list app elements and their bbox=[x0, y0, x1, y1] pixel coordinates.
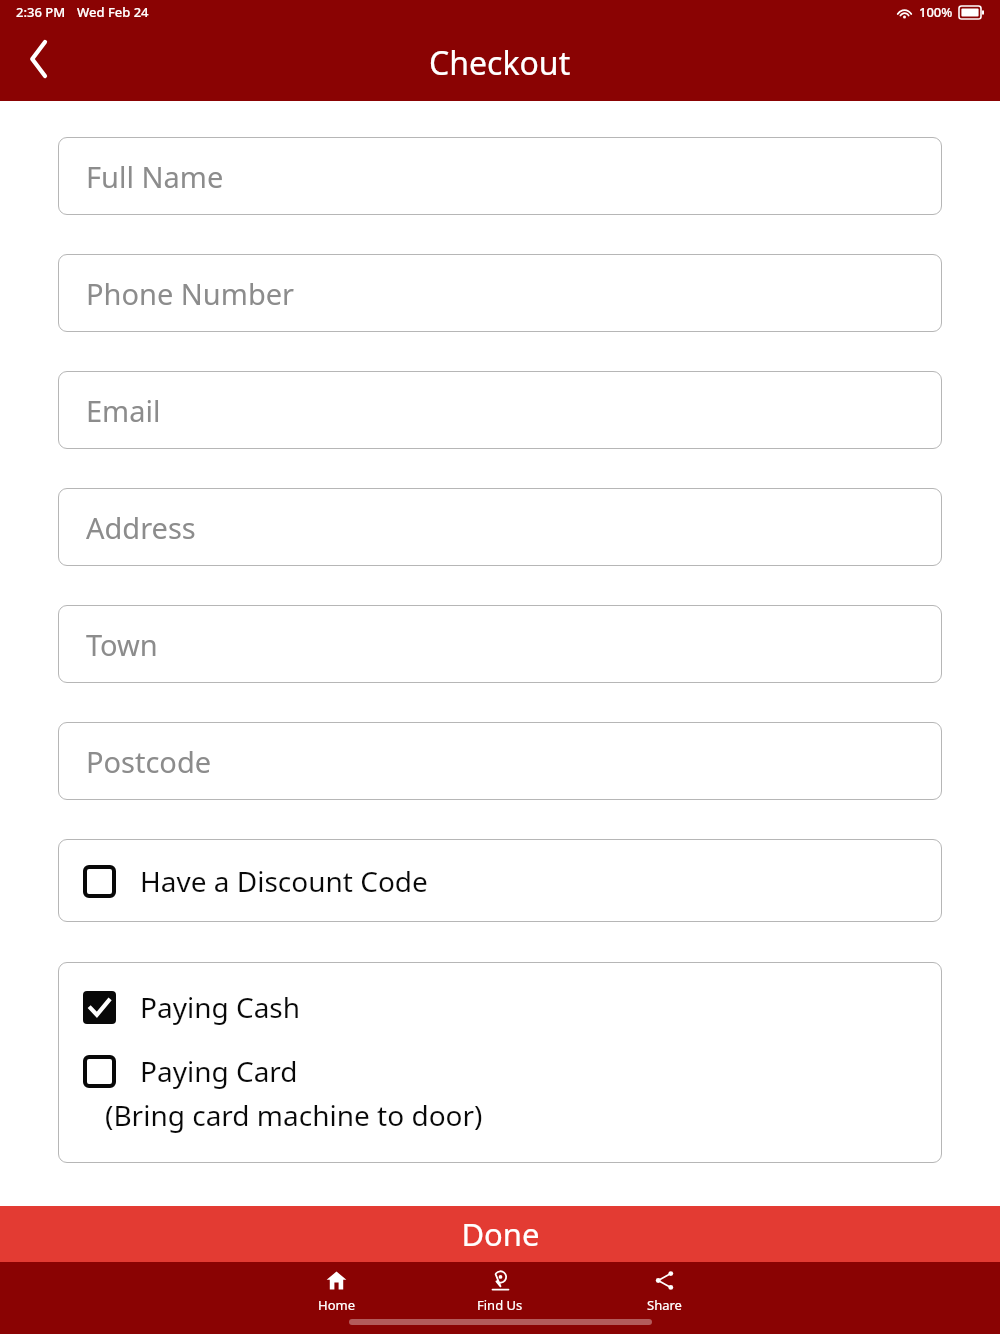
button[interactable]: Done bbox=[0, 1206, 1000, 1262]
button[interactable]: Postcode bbox=[58, 722, 942, 800]
staticText: Paying Cash bbox=[140, 988, 301, 1026]
button[interactable]: Find Us bbox=[474, 1270, 526, 1314]
staticText: Checkout bbox=[429, 41, 571, 85]
staticText: Town bbox=[86, 625, 158, 664]
staticText: Phone Number bbox=[86, 274, 295, 313]
button[interactable]: Paying Cash bbox=[83, 988, 942, 1026]
button[interactable]: Home bbox=[310, 1270, 362, 1314]
staticText: Home bbox=[318, 1296, 355, 1314]
staticText: Paying Card bbox=[140, 1052, 298, 1090]
button[interactable]: Town bbox=[58, 605, 942, 683]
button[interactable]: Address bbox=[58, 488, 942, 566]
staticText: Share bbox=[647, 1296, 682, 1314]
staticText: Wed Feb 24 bbox=[77, 3, 149, 21]
button[interactable]: Have a Discount Code bbox=[58, 839, 942, 922]
staticText: Email bbox=[86, 391, 161, 430]
button[interactable]: Full Name bbox=[58, 137, 942, 215]
staticText: Postcode bbox=[86, 742, 212, 781]
staticText: Done bbox=[461, 1213, 540, 1255]
staticText: 100% bbox=[919, 3, 953, 21]
staticText: Address bbox=[86, 508, 196, 547]
staticText: Full Name bbox=[86, 157, 224, 196]
staticText: (Bring card machine to door) bbox=[105, 1096, 483, 1134]
staticText: Have a Discount Code bbox=[140, 862, 428, 900]
staticText: Find Us bbox=[477, 1296, 523, 1314]
button[interactable]: Email bbox=[58, 371, 942, 449]
button[interactable]: Back bbox=[8, 28, 70, 90]
button[interactable]: Phone Number bbox=[58, 254, 942, 332]
button[interactable]: Paying Card bbox=[58, 1052, 942, 1134]
staticText: 2:36 PM bbox=[16, 3, 66, 21]
button[interactable]: Share bbox=[638, 1270, 690, 1314]
